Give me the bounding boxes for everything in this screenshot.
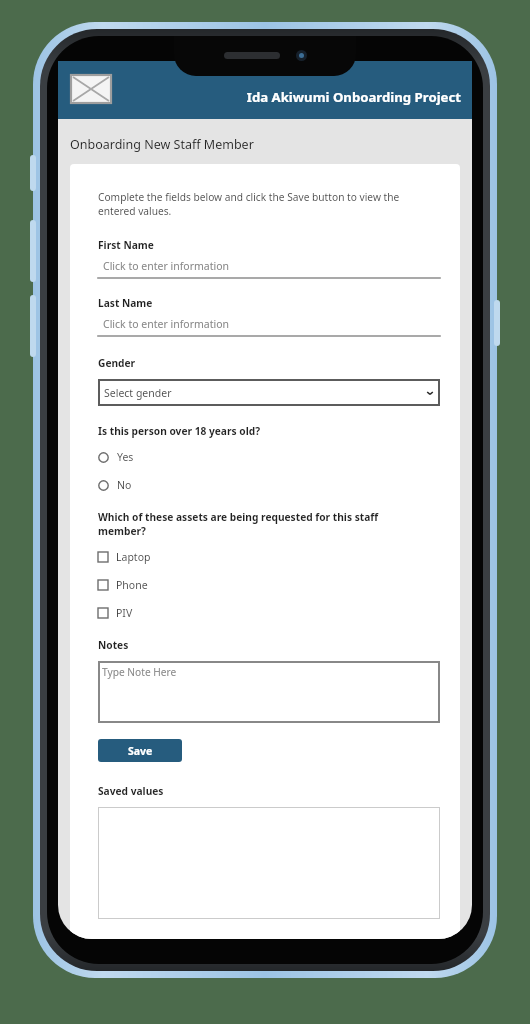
staticText: Saved values [98, 784, 164, 798]
staticText: Yes [117, 450, 134, 464]
button[interactable]: Type Note Here [98, 661, 440, 723]
button[interactable]: Save [98, 739, 182, 762]
button[interactable]: Laptop [98, 550, 440, 564]
button[interactable]: Select gender [98, 379, 440, 406]
staticText: Gender [98, 356, 136, 370]
button[interactable]: Phone [98, 578, 440, 592]
staticText: Ida Akiwumi Onboarding Project [246, 88, 461, 106]
staticText: Laptop [116, 550, 151, 564]
staticText: Select gender [104, 386, 172, 400]
staticText: Phone [116, 578, 148, 592]
staticText: PIV [116, 606, 133, 620]
button[interactable]: PIV [98, 606, 440, 620]
staticText: Type Note Here [102, 665, 177, 679]
staticText: No [117, 478, 132, 492]
staticText: Save [128, 744, 153, 758]
staticText: Click to enter information [103, 259, 230, 273]
button[interactable]: Yes [98, 450, 440, 464]
button[interactable]: Click to enter information [98, 317, 440, 337]
staticText: Click to enter information [103, 317, 230, 331]
staticText: Notes [98, 638, 129, 652]
button[interactable]: No [98, 478, 440, 492]
staticText: Onboarding New Staff Member [70, 136, 254, 153]
staticText: Is this person over 18 years old? [98, 424, 260, 438]
staticText: Last Name [98, 296, 153, 310]
staticText: First Name [98, 238, 154, 252]
staticText: Complete the fields below and click the … [98, 190, 400, 218]
staticText: Which of these assets are being requeste… [98, 510, 379, 538]
button[interactable]: Click to enter information [98, 259, 440, 279]
button[interactable]: Site logo [69, 73, 113, 105]
